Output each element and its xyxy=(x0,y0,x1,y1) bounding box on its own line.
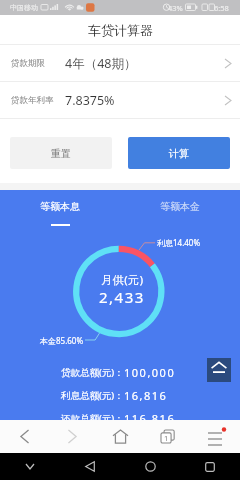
staticText: 重置 xyxy=(51,147,71,160)
button[interactable]: Back xyxy=(60,453,120,480)
staticText: 116,816 xyxy=(124,411,176,426)
button[interactable]: Tabs xyxy=(144,420,192,453)
button[interactable]: 等额本金 xyxy=(120,190,240,230)
staticText: 2,433 xyxy=(99,287,145,307)
button[interactable]: 等额本息 xyxy=(0,190,120,230)
staticText: 4年（48期） xyxy=(65,55,137,72)
button[interactable]: Recents xyxy=(180,453,240,480)
staticText: 100,000 xyxy=(124,365,176,380)
staticText: 中国移动 xyxy=(10,3,38,12)
staticText: 6:58 xyxy=(214,3,229,13)
staticText: 43% xyxy=(168,3,183,13)
button[interactable]: Scroll to top xyxy=(207,358,231,382)
staticText: 月供(元) xyxy=(101,272,144,287)
button[interactable]: Forward xyxy=(48,420,96,453)
staticText: 7.8375% xyxy=(65,92,115,109)
button[interactable]: Hide keyboard xyxy=(0,453,60,480)
button[interactable]: Back xyxy=(0,420,48,453)
staticText: 车贷计算器 xyxy=(88,22,153,38)
button[interactable]: 重置 xyxy=(10,137,112,169)
staticText: 贷款总额(元)： xyxy=(61,366,124,379)
staticText: 1 xyxy=(164,433,169,443)
button[interactable]: 计算 xyxy=(128,137,230,169)
staticText: 本金85.60% xyxy=(40,335,84,346)
staticText: 贷款期限 xyxy=(11,58,45,69)
button[interactable]: 贷款期限 xyxy=(0,45,240,82)
staticText: 计算 xyxy=(169,147,189,160)
staticText: 还款总额(元)： xyxy=(61,412,124,425)
staticText: 贷款年利率 xyxy=(11,95,54,106)
staticText: 利息14.40% xyxy=(157,237,201,248)
staticText: 等额本息 xyxy=(40,200,80,213)
staticText: 16,816 xyxy=(124,388,168,403)
button[interactable]: Home xyxy=(120,453,180,480)
staticText: 利息总额(元)： xyxy=(61,389,124,402)
button[interactable]: 贷款年利率 xyxy=(0,82,240,119)
button[interactable]: Menu xyxy=(192,420,240,453)
button[interactable]: Home xyxy=(96,420,144,453)
staticText: 等额本金 xyxy=(160,200,200,213)
